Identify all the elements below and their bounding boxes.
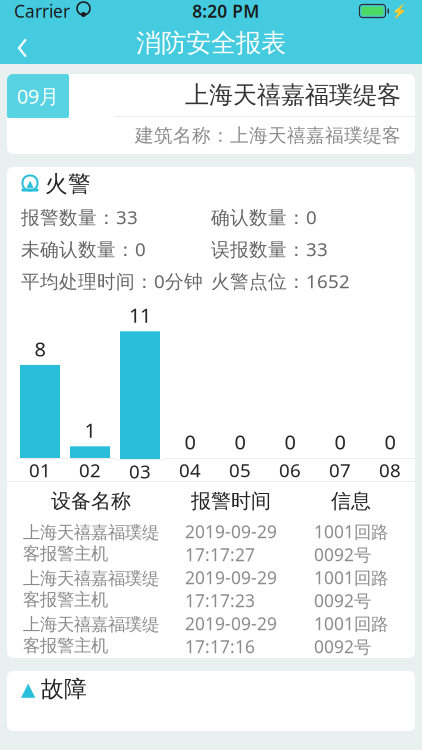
staticText: 未确认数量：0 bbox=[21, 237, 146, 261]
staticText: 08 bbox=[379, 458, 401, 482]
staticText: 消防安全报表 bbox=[136, 27, 286, 58]
staticText: 0 bbox=[184, 428, 195, 455]
staticText: 故障 bbox=[41, 675, 87, 703]
staticText: ▲ bbox=[21, 678, 35, 700]
staticText: 02 bbox=[79, 458, 101, 482]
staticText: 06 bbox=[279, 458, 301, 482]
staticText: 上海天禧嘉福璞缇客 bbox=[185, 80, 401, 110]
staticText: 上海天禧嘉福璞缇客报警主机 bbox=[23, 614, 159, 656]
staticText: 2019-09-29 17:17:23 bbox=[185, 566, 277, 612]
staticText: 1001回路0092号 bbox=[314, 520, 388, 566]
staticText: 2019-09-29 17:17:16 bbox=[185, 612, 277, 658]
staticText: 平均处理时间：0分钟 bbox=[21, 269, 203, 293]
staticText: 0 bbox=[234, 428, 245, 455]
staticText: 11 bbox=[129, 302, 151, 328]
staticText: 05 bbox=[229, 458, 251, 482]
staticText: 0 bbox=[334, 428, 345, 455]
staticText: 火警 bbox=[45, 170, 91, 198]
button[interactable]: 返回 bbox=[0, 22, 44, 64]
staticText: 2019-09-29 17:17:27 bbox=[185, 520, 277, 566]
staticText: 1001回路0092号 bbox=[314, 566, 388, 612]
staticText: 07 bbox=[329, 458, 351, 482]
staticText: 确认数量：0 bbox=[211, 205, 317, 229]
staticText: 报警数量：33 bbox=[21, 205, 138, 229]
staticText: 0 bbox=[384, 428, 395, 455]
staticText: 01 bbox=[29, 458, 51, 482]
staticText: 上海天禧嘉福璞缇客报警主机 bbox=[23, 568, 159, 610]
staticText: 8 bbox=[34, 335, 45, 362]
staticText: 0 bbox=[284, 428, 295, 455]
staticText: 上海天禧嘉福璞缇客报警主机 bbox=[23, 522, 159, 564]
staticText: 报警时间 bbox=[191, 489, 271, 513]
staticText: ▲ bbox=[26, 178, 33, 189]
staticText: 设备名称 bbox=[51, 489, 131, 513]
staticText: 信息 bbox=[331, 489, 371, 513]
staticText: 09月 bbox=[17, 83, 59, 109]
staticText: 1 bbox=[84, 417, 95, 443]
staticText: 03 bbox=[129, 459, 151, 484]
staticText: 建筑名称：上海天禧嘉福璞缇客 bbox=[135, 124, 401, 147]
staticText: 8:20 PM bbox=[192, 0, 259, 22]
staticText: Carrier bbox=[14, 0, 70, 22]
staticText: 1001回路0092号 bbox=[314, 612, 388, 658]
staticText: 04 bbox=[179, 458, 201, 482]
staticText: 误报数量：33 bbox=[211, 237, 328, 261]
staticText: ‹ bbox=[16, 13, 28, 73]
staticText: 火警点位：1652 bbox=[211, 269, 350, 293]
staticText: ⚡ bbox=[391, 3, 408, 19]
